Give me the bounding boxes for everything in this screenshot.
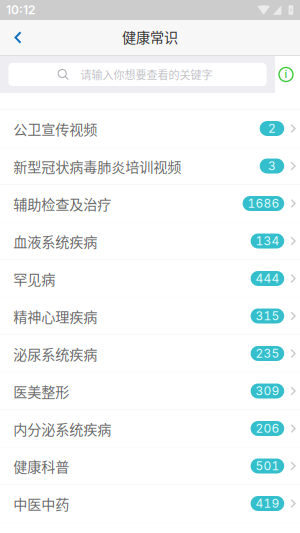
staticText: 206: [255, 421, 279, 436]
staticText: 2: [268, 121, 276, 136]
staticText: 新型冠状病毒肺炎培训视频: [13, 156, 181, 176]
staticText: 309: [255, 384, 279, 398]
button[interactable]: 精神心理疾病: [0, 297, 300, 335]
button[interactable]: Information: [275, 56, 300, 93]
staticText: 健康常识: [122, 26, 178, 47]
staticText: 235: [255, 346, 279, 361]
button[interactable]: 新型冠状病毒肺炎培训视频: [0, 147, 300, 185]
staticText: 315: [255, 309, 279, 323]
staticText: 泌尿系统疾病: [13, 343, 97, 364]
staticText: 医美整形: [13, 381, 69, 401]
staticText: 3: [268, 159, 276, 173]
button[interactable]: 健康科普: [0, 447, 300, 485]
staticText: 444: [255, 271, 279, 286]
staticText: 10:12: [6, 3, 35, 17]
staticText: i: [284, 68, 287, 80]
button[interactable]: 罕见病: [0, 260, 300, 297]
button[interactable]: 医美整形: [0, 372, 300, 410]
staticText: 中医中药: [13, 493, 69, 514]
staticText: 1686: [247, 196, 279, 211]
staticText: 公卫宣传视频: [13, 118, 97, 139]
button[interactable]: 公卫宣传视频: [0, 110, 300, 147]
button[interactable]: 泌尿系统疾病: [0, 335, 300, 372]
button[interactable]: 辅助检查及治疗: [0, 185, 300, 222]
staticText: 419: [255, 496, 279, 511]
staticText: 内分泌系统疾病: [13, 418, 111, 439]
staticText: 血液系统疾病: [13, 231, 97, 251]
staticText: 健康科普: [13, 456, 69, 476]
staticText: 精神心理疾病: [13, 306, 97, 326]
button[interactable]: 内分泌系统疾病: [0, 410, 300, 447]
staticText: 罕见病: [13, 268, 55, 289]
staticText: 辅助检查及治疗: [13, 193, 111, 214]
button[interactable]: 血液系统疾病: [0, 222, 300, 260]
staticText: 请输入你想要查看的关键字: [80, 67, 212, 82]
button[interactable]: Back: [0, 19, 35, 55]
button[interactable]: 中医中药: [0, 485, 300, 522]
button[interactable]: 请输入你想要查看的关键字: [0, 56, 275, 93]
staticText: 134: [255, 234, 279, 248]
staticText: 501: [255, 459, 279, 473]
